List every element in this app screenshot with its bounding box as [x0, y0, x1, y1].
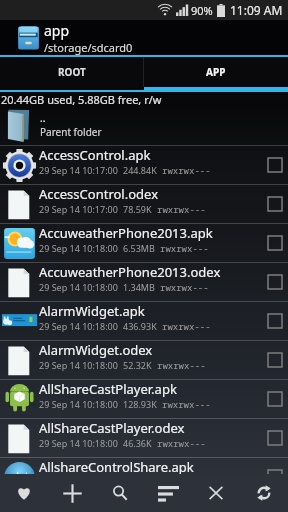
- staticText: AccuweatherPhone2013.apk: [39, 224, 213, 242]
- staticText: 29 Sep 14 10:18:00: [39, 359, 118, 371]
- staticText: AlarmWidget.odex: [39, 341, 153, 359]
- button[interactable]: AllShareCastPlayer.odex: [0, 419, 288, 457]
- staticText: AllShareCastPlayer.odex: [39, 419, 185, 437]
- staticText: 90%: [191, 3, 213, 18]
- staticText: 52.32K: [123, 359, 152, 371]
- staticText: 46.36K: [123, 437, 152, 449]
- staticText: rwxrwx---: [162, 320, 211, 332]
- staticText: rwxrwx---: [157, 359, 206, 371]
- staticText: AccessControl.odex: [39, 185, 159, 203]
- button[interactable]: Close: [192, 474, 240, 512]
- staticText: 29 Sep 14 10:17:00: [39, 203, 118, 215]
- button[interactable]: Select AccuweatherPhone2013.odex: [263, 263, 287, 301]
- staticText: rwxrwx---: [160, 281, 209, 293]
- button[interactable]: Select AccessControl.apk: [263, 146, 287, 184]
- button[interactable]: ROOT: [0, 57, 143, 87]
- button[interactable]: AccessControl.apk: [0, 146, 288, 184]
- staticText: ..: [40, 111, 46, 125]
- staticText: rwxrwx---: [160, 242, 209, 254]
- staticText: AllshareControlShare.apk: [39, 458, 194, 476]
- button[interactable]: AccuweatherPhone2013.apk: [0, 224, 288, 262]
- staticText: AccuweatherPhone2013.odex: [39, 263, 221, 281]
- staticText: rwxrwx---: [162, 164, 211, 176]
- staticText: 244.84K: [123, 164, 157, 176]
- button[interactable]: AlarmWidget.odex: [0, 341, 288, 379]
- staticText: 29 Sep 14 10:18:00: [39, 437, 118, 449]
- button[interactable]: Favorites: [0, 474, 48, 512]
- staticText: 6.53MB: [123, 242, 155, 254]
- staticText: rwxrwx---: [162, 398, 211, 410]
- staticText: app: [44, 21, 70, 40]
- staticText: AlarmWidget.apk: [39, 302, 145, 320]
- staticText: 20.44GB used, 5.88GB free, r/w: [1, 92, 162, 106]
- staticText: 128.93K: [123, 398, 157, 410]
- button[interactable]: AlarmWidget.apk: [0, 302, 288, 340]
- staticText: /storage/sdcard0: [44, 40, 133, 55]
- staticText: 78.59K: [123, 203, 152, 215]
- button[interactable]: Select AccuweatherPhone2013.apk: [263, 224, 287, 262]
- button[interactable]: Select AllShareCastPlayer.odex: [263, 419, 287, 457]
- button[interactable]: AccuweatherPhone2013.odex: [0, 263, 288, 301]
- button[interactable]: AccessControl.odex: [0, 185, 288, 223]
- staticText: 29 Sep 14 10:18:00: [39, 281, 118, 293]
- staticText: 29 Sep 14 10:18:00: [39, 476, 118, 488]
- staticText: rwxrwx---: [157, 437, 206, 449]
- button[interactable]: Sort: [144, 474, 192, 512]
- staticText: 29 Sep 14 10:17:00: [39, 164, 118, 176]
- staticText: 1.34MB: [123, 281, 155, 293]
- staticText: 436.93K: [123, 320, 157, 332]
- staticText: 11:09 AM: [230, 2, 283, 18]
- staticText: AccessControl.apk: [39, 146, 151, 164]
- button[interactable]: Add: [48, 474, 96, 512]
- button[interactable]: AllShareCastPlayer.apk: [0, 380, 288, 418]
- staticText: AllShareCastPlayer.apk: [39, 380, 177, 398]
- staticText: APP: [206, 65, 226, 79]
- staticText: rwxrwx---: [157, 203, 206, 215]
- staticText: 29 Sep 14 10:18:00: [39, 242, 118, 254]
- button[interactable]: ..: [0, 106, 288, 145]
- button[interactable]: Select AccessControl.odex: [263, 185, 287, 223]
- button[interactable]: Select AllShareCastPlayer.apk: [263, 380, 287, 418]
- button[interactable]: APP: [144, 57, 288, 87]
- button[interactable]: Refresh: [240, 474, 288, 512]
- staticText: 29 Sep 14 10:18:00: [39, 320, 118, 332]
- button[interactable]: Select AllshareControlShare.apk: [263, 458, 287, 496]
- staticText: 29 Sep 14 10:18:00: [39, 398, 118, 410]
- button[interactable]: Select AlarmWidget.odex: [263, 341, 287, 379]
- staticText: Parent folder: [40, 125, 102, 139]
- staticText: ROOT: [58, 65, 86, 79]
- button[interactable]: Search: [96, 474, 144, 512]
- button[interactable]: Select AlarmWidget.apk: [263, 302, 287, 340]
- button[interactable]: AllshareControlShare.apk: [0, 458, 288, 496]
